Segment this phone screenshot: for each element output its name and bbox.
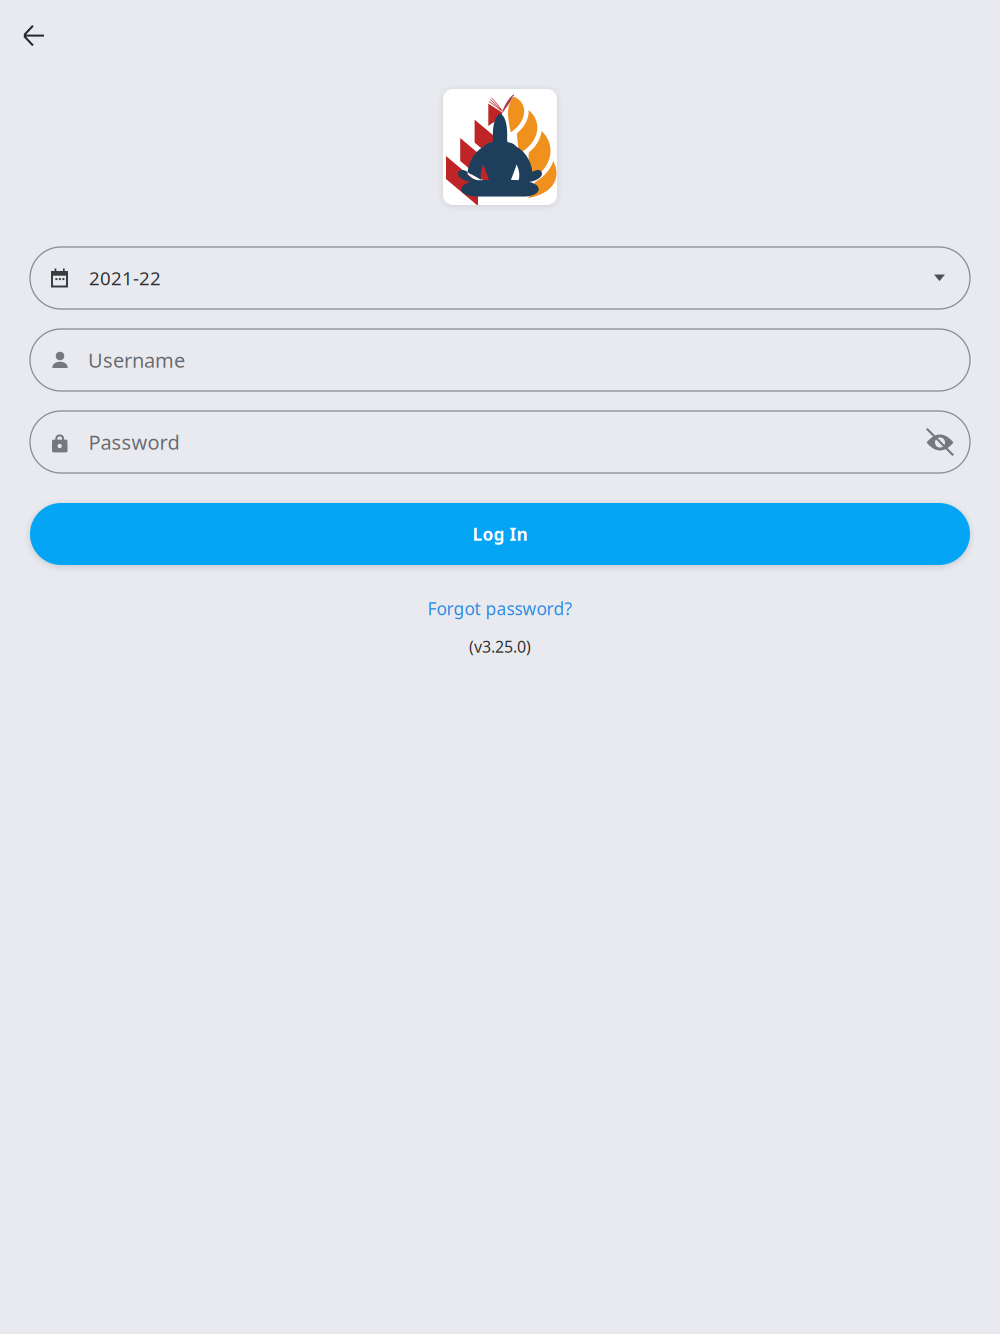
- staticText: Log In: [472, 522, 527, 545]
- staticText: Forgot password?: [427, 597, 572, 620]
- button[interactable]: Back: [0, 0, 59, 61]
- button[interactable]: 2021-22: [30, 247, 970, 309]
- staticText: Username: [88, 347, 185, 373]
- staticText: (v3.25.0): [469, 636, 531, 657]
- button[interactable]: Log In: [30, 503, 970, 565]
- staticText: Password: [88, 429, 179, 455]
- button[interactable]: Forgot password?: [415, 593, 584, 624]
- staticText: 2021-22: [89, 266, 161, 290]
- button[interactable]: Show password: [926, 428, 970, 456]
